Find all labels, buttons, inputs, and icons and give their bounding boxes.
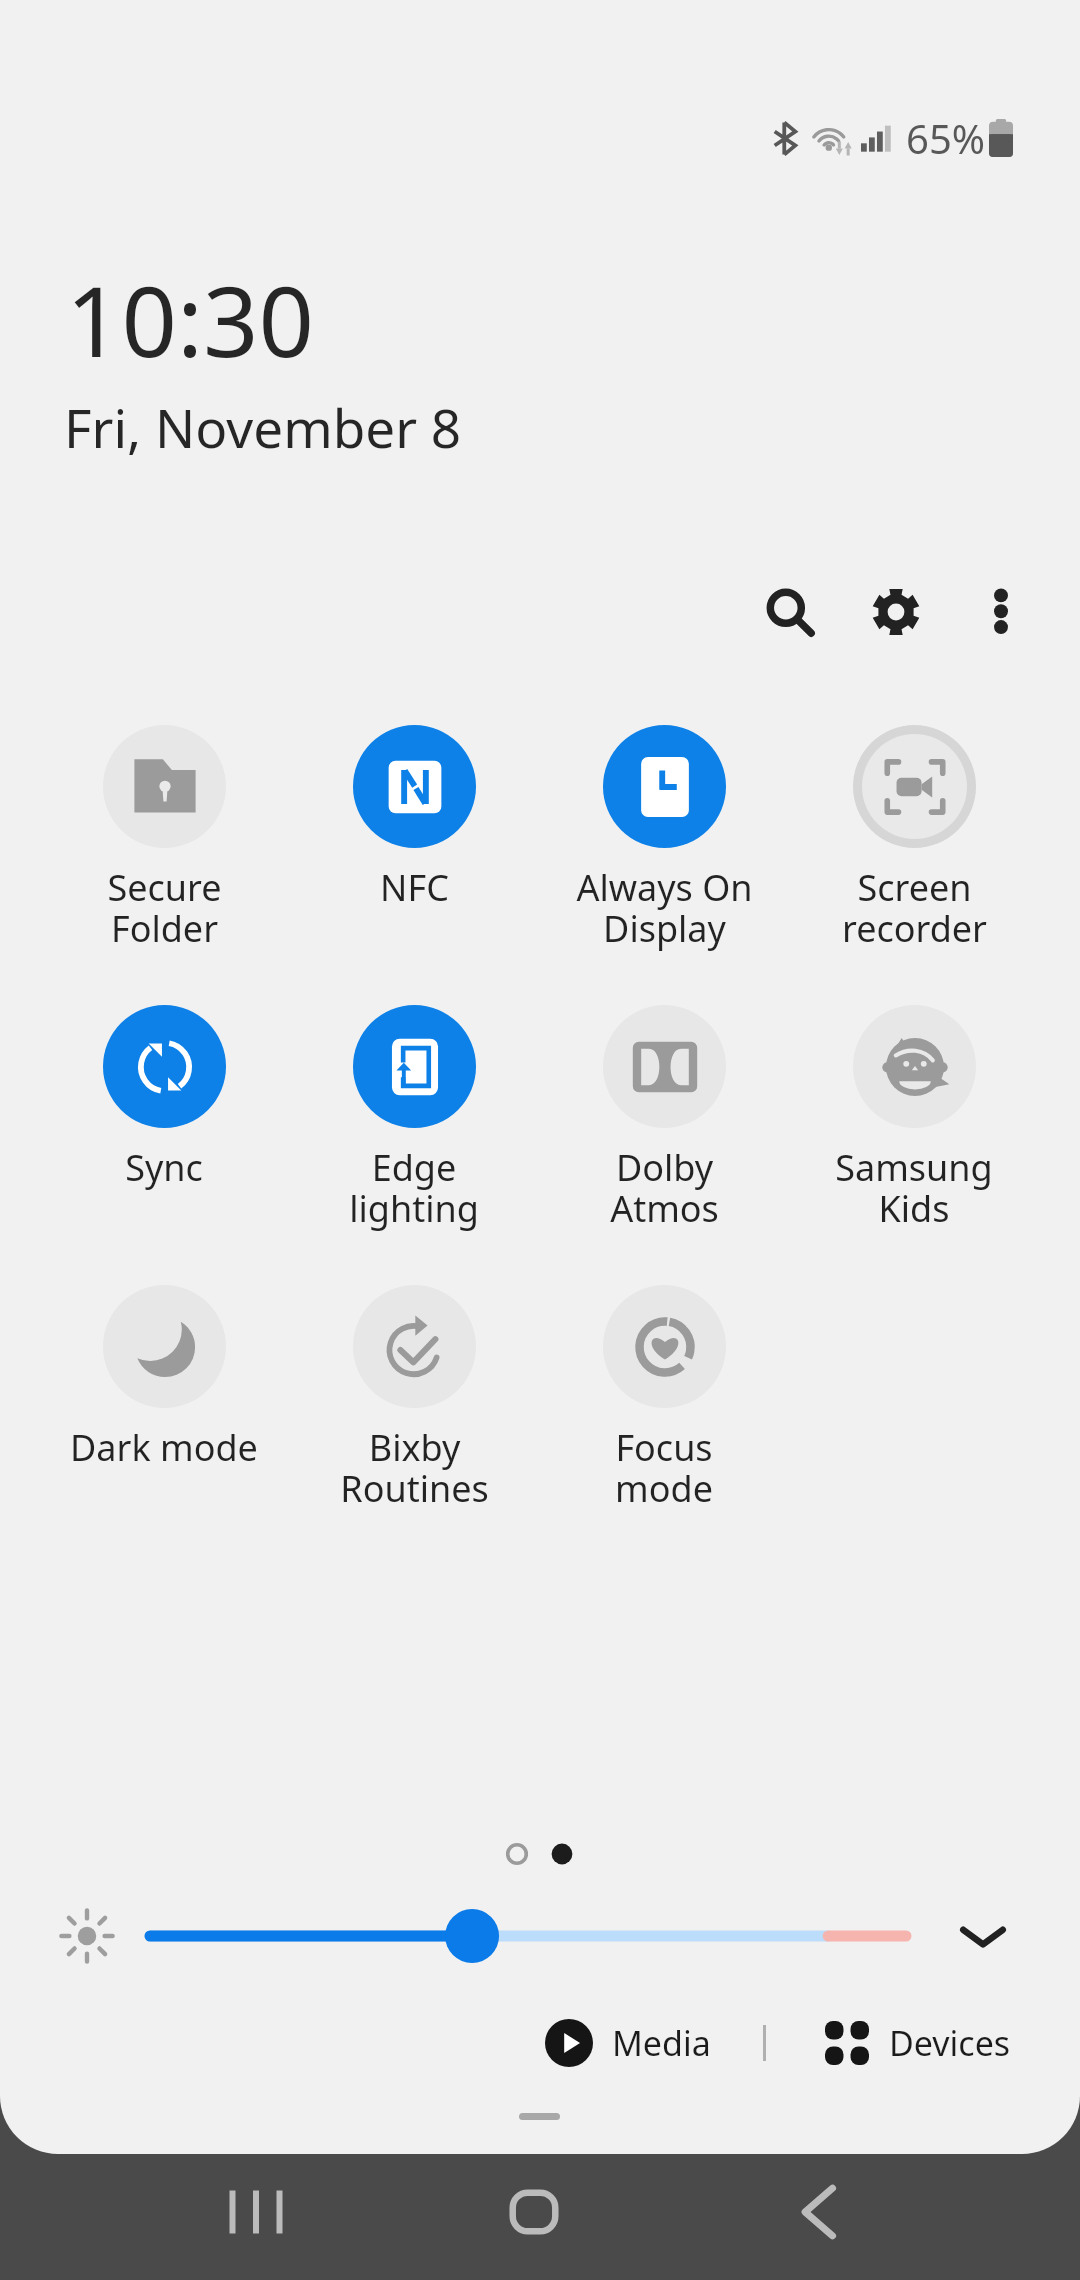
staticText: Bixby Routines [340, 1423, 489, 1513]
button[interactable]: Focus mode [539, 1277, 789, 1527]
staticText: Screen recorder [842, 863, 987, 953]
button[interactable]: NFC [289, 717, 539, 967]
staticText: Samsung Kids [835, 1143, 993, 1233]
button[interactable]: Back [758, 2152, 878, 2272]
staticText: Media [612, 2020, 711, 2066]
button[interactable]: Screen recorder [789, 717, 1039, 967]
staticText: NFC [380, 863, 449, 912]
button[interactable]: Dolby Atmos [539, 997, 789, 1247]
button[interactable]: Sync [39, 997, 289, 1247]
button[interactable]: Media [531, 2009, 725, 2077]
button[interactable]: Devices [811, 2009, 1025, 2077]
staticText: Dolby Atmos [610, 1143, 719, 1233]
staticText: Dark mode [70, 1423, 258, 1472]
staticText: Edge lighting [349, 1143, 479, 1233]
button[interactable]: Edge lighting [289, 997, 539, 1247]
button[interactable]: Brightness [150, 1906, 906, 1966]
staticText: Focus mode [615, 1423, 713, 1513]
button[interactable]: Secure Folder [39, 717, 289, 967]
button[interactable]: Home [474, 2152, 594, 2272]
button[interactable]: Expand brightness settings [943, 1896, 1023, 1976]
button[interactable]: Bixby Routines [289, 1277, 539, 1527]
staticText: Devices [889, 2020, 1011, 2066]
button[interactable]: Recents [196, 2152, 316, 2272]
staticText: Always On Display [576, 863, 753, 953]
button[interactable]: Always On Display [539, 717, 789, 967]
staticText: Fri, November 8 [64, 391, 462, 463]
staticText: 65% [906, 111, 985, 165]
button[interactable]: Dark mode [39, 1277, 289, 1527]
staticText: Sync [125, 1143, 203, 1192]
button[interactable]: More options [946, 556, 1056, 666]
staticText: Secure Folder [107, 863, 222, 953]
button[interactable]: Search [735, 557, 845, 667]
button[interactable]: Samsung Kids [789, 997, 1039, 1247]
staticText: 10:30 [66, 253, 314, 385]
button[interactable]: Settings [841, 557, 951, 667]
